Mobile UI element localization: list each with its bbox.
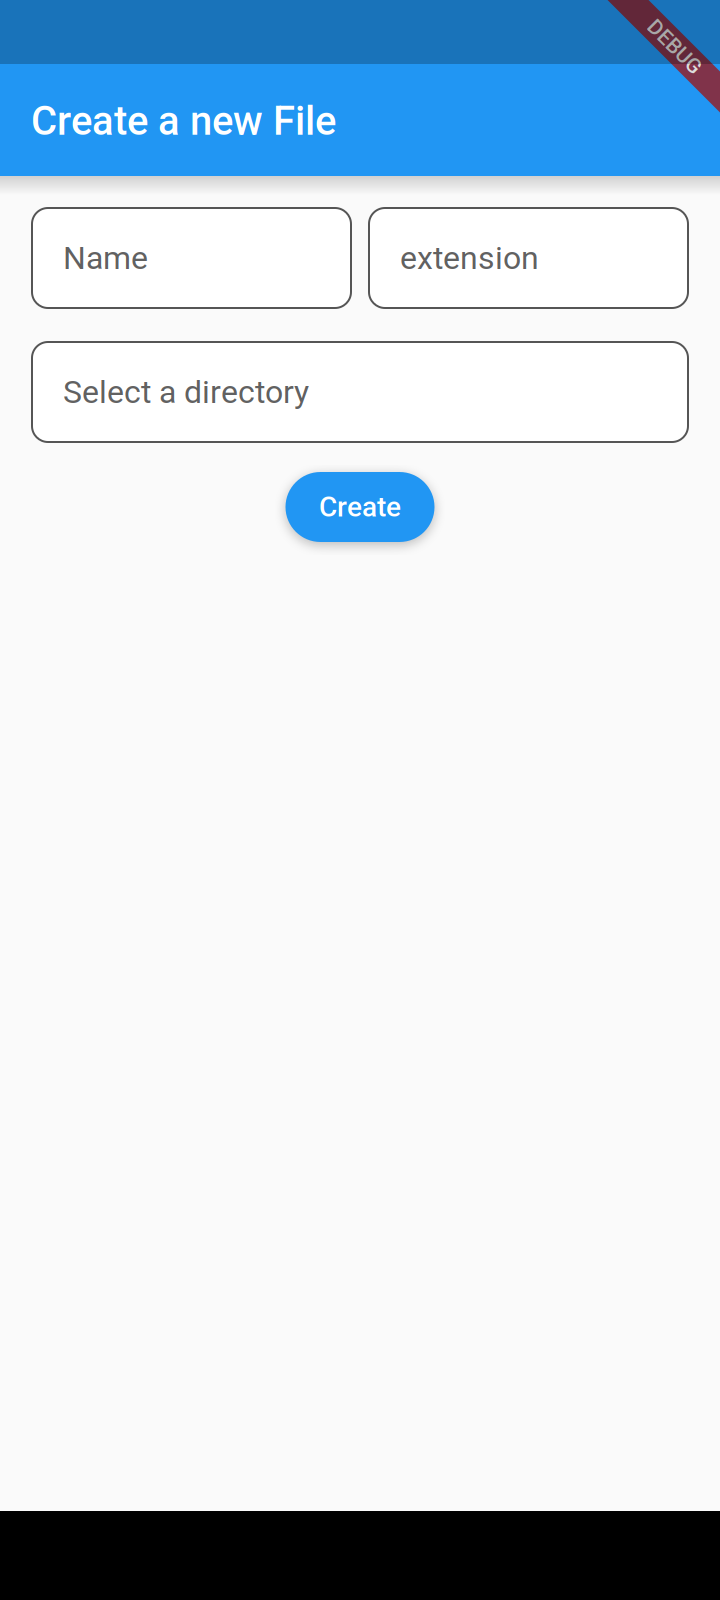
button[interactable]: Create bbox=[285, 472, 434, 542]
staticText: Name bbox=[63, 239, 148, 277]
staticText: Create a new File bbox=[31, 98, 336, 144]
button[interactable]: Select a directory bbox=[32, 342, 688, 442]
button[interactable]: extension bbox=[369, 208, 688, 308]
staticText: DEBUG bbox=[641, 34, 709, 59]
staticText: extension bbox=[400, 239, 539, 277]
button[interactable]: Name bbox=[32, 208, 351, 308]
staticText: Create bbox=[319, 491, 401, 523]
staticText: Select a directory bbox=[63, 373, 309, 411]
